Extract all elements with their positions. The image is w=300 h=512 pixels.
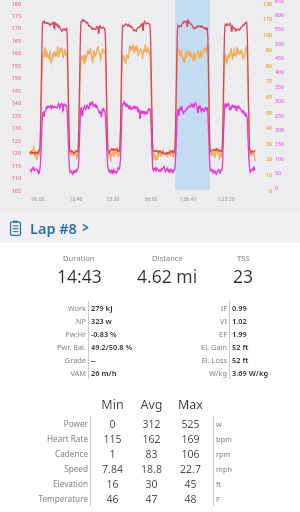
staticText: 90 xyxy=(257,46,272,53)
staticText: 49.2/50.8 % xyxy=(91,342,169,352)
staticText: Lap #8 xyxy=(30,218,77,238)
staticText: Elevation xyxy=(0,478,88,489)
staticText: 106 xyxy=(171,447,210,461)
staticText: Pw:Hr xyxy=(0,329,86,339)
staticText: 4.62 mi xyxy=(137,264,198,288)
staticText: 52 ft xyxy=(232,342,292,352)
staticText: 30 xyxy=(132,477,171,491)
staticText: 162 xyxy=(132,432,171,446)
staticText: 169 xyxy=(171,432,210,446)
staticText: VAM xyxy=(0,368,86,378)
staticText: 1.99 xyxy=(232,329,292,339)
staticText: 14:43 xyxy=(57,264,102,288)
staticText: 10 xyxy=(257,171,272,178)
staticText: VI xyxy=(169,316,227,326)
staticText: 100 xyxy=(275,155,295,162)
staticText: Speed xyxy=(0,463,88,474)
staticText: 500 xyxy=(275,40,295,47)
staticText: 135 xyxy=(2,112,21,119)
staticText: 110 xyxy=(2,174,21,181)
staticText: 0 xyxy=(257,187,272,194)
staticText: 16:40 xyxy=(63,196,89,203)
staticText: 50 xyxy=(257,109,272,116)
staticText: 33:20 xyxy=(100,196,126,203)
staticText: 350 xyxy=(275,83,295,90)
staticText: 125 xyxy=(2,137,21,144)
staticText: 16 xyxy=(93,477,132,491)
staticText: 20 xyxy=(257,155,272,162)
staticText: 312 xyxy=(132,417,171,431)
staticText: 323 w xyxy=(91,316,169,326)
staticText: 150 xyxy=(275,140,295,147)
other: Open lap details xyxy=(82,222,89,233)
staticText: Cadence xyxy=(0,448,88,459)
staticText: 279 kJ xyxy=(91,303,169,313)
staticText: 0 xyxy=(93,417,132,431)
staticText: 00:00 xyxy=(25,196,51,203)
staticText: 145 xyxy=(2,87,21,94)
staticText: 30 xyxy=(257,140,272,147)
staticText: -- xyxy=(91,355,169,365)
staticText: 100 xyxy=(257,31,272,38)
staticText: 550 xyxy=(275,25,295,32)
staticText: 1.02 xyxy=(232,316,292,326)
staticText: 50:00 xyxy=(138,196,164,203)
staticText: 0 xyxy=(275,184,295,191)
staticText: 650 xyxy=(275,0,295,4)
staticText: 60 xyxy=(257,93,272,100)
staticText: Distance xyxy=(152,253,183,263)
staticText: Heart Rate xyxy=(0,433,88,444)
staticText: 105 xyxy=(2,187,21,194)
staticText: 46 xyxy=(93,492,132,506)
staticText: 18.8 xyxy=(132,462,171,476)
staticText: 600 xyxy=(275,11,295,18)
staticText: 150 xyxy=(2,74,21,81)
staticText: EF xyxy=(169,329,227,339)
staticText: 83 xyxy=(132,447,171,461)
staticText: 140 xyxy=(2,99,21,106)
staticText: Temperature xyxy=(0,493,88,504)
staticText: Work xyxy=(0,303,86,313)
staticText: Min xyxy=(93,396,132,413)
staticText: El. Loss xyxy=(169,355,227,365)
staticText: El. Gain xyxy=(169,342,227,352)
staticText: 180 xyxy=(2,0,21,7)
staticText: IF xyxy=(169,303,227,313)
staticText: Grade xyxy=(0,355,86,365)
staticText: TSS xyxy=(237,253,250,263)
staticText: 52 ft xyxy=(232,355,292,365)
staticText: 155 xyxy=(2,62,21,69)
staticText: w xyxy=(216,419,242,429)
staticText: bpm xyxy=(216,434,242,444)
staticText: 40 xyxy=(257,124,272,131)
staticText: 450 xyxy=(275,54,295,61)
button[interactable]: Lap #8 xyxy=(0,212,300,243)
staticText: 48 xyxy=(171,492,210,506)
staticText: Duration xyxy=(63,253,95,263)
staticText: mph xyxy=(216,464,242,474)
staticText: 120 xyxy=(257,0,272,7)
staticText: ft xyxy=(216,479,242,489)
staticText: 525 xyxy=(171,417,210,431)
staticText: 1:06:40 xyxy=(175,196,201,203)
staticText: F xyxy=(216,494,242,504)
staticText: -0.83 % xyxy=(91,329,169,339)
staticText: 47 xyxy=(132,492,171,506)
staticText: 175 xyxy=(2,12,21,19)
staticText: 250 xyxy=(275,112,295,119)
staticText: 115 xyxy=(93,432,132,446)
staticText: 50 xyxy=(275,169,295,176)
staticText: 0.99 xyxy=(232,303,292,313)
staticText: 22.7 xyxy=(171,462,210,476)
staticText: 400 xyxy=(275,68,295,75)
staticText: 160 xyxy=(2,49,21,56)
staticText: 7.84 xyxy=(93,462,132,476)
staticText: 115 xyxy=(2,162,21,169)
staticText: 26 m/h xyxy=(91,368,169,378)
staticText: 23 xyxy=(233,264,254,288)
staticText: 130 xyxy=(2,124,21,131)
staticText: 165 xyxy=(2,37,21,44)
staticText: 45 xyxy=(171,477,210,491)
staticText: 1 xyxy=(93,447,132,461)
staticText: 110 xyxy=(257,15,272,22)
